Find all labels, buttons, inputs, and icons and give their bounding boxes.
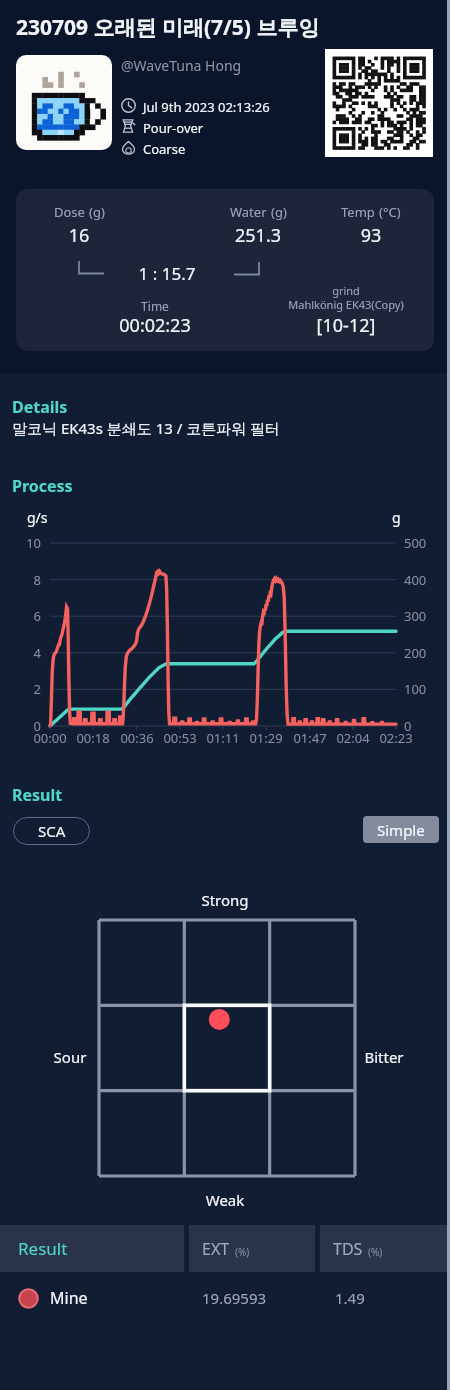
staticText: grind — [236, 283, 450, 298]
staticText: 02:04 — [329, 729, 377, 747]
staticText: (%) — [368, 1245, 383, 1259]
staticText: Details — [12, 396, 68, 418]
staticText: 0 — [404, 717, 412, 735]
staticText: [10-12] — [236, 313, 450, 338]
staticText: @WaveTuna Hong — [121, 56, 242, 75]
staticText: 말코닉 EK43s 분쇄도 13 / 코튼파워 필터 — [12, 418, 281, 438]
button[interactable]: SCA — [13, 817, 90, 845]
staticText: 4 — [14, 644, 41, 662]
button[interactable]: Result — [0, 1225, 184, 1272]
staticText: Water — [230, 203, 267, 221]
staticText: Dose — [54, 203, 85, 221]
staticText: 01:11 — [199, 729, 247, 747]
staticText: 00:00 — [26, 729, 74, 747]
staticText: 00:36 — [113, 729, 161, 747]
staticText: 16 — [0, 223, 189, 248]
staticText: Result — [18, 1237, 68, 1260]
staticText: Mine — [50, 1287, 88, 1309]
staticText: Bitter — [274, 1047, 450, 1067]
staticText: Sour — [0, 1047, 180, 1067]
staticText: Weak — [115, 1190, 335, 1210]
button[interactable]: TDS — [320, 1225, 450, 1272]
staticText: Temp — [341, 203, 375, 221]
staticText: 00:18 — [69, 729, 117, 747]
staticText: 1 : 15.7 — [57, 262, 277, 285]
staticText: 300 — [404, 607, 427, 625]
staticText: Pour-over — [143, 119, 204, 137]
staticText: 0 — [14, 717, 41, 735]
staticText: 251.3 — [148, 223, 368, 248]
staticText: 500 — [404, 534, 427, 552]
staticText: 01:47 — [286, 729, 334, 747]
button[interactable]: EXT — [189, 1225, 315, 1272]
staticText: 200 — [404, 644, 427, 662]
button[interactable]: Simple — [363, 816, 439, 843]
staticText: 01:29 — [242, 729, 290, 747]
staticText: Process — [12, 475, 73, 497]
staticText: (g) — [271, 203, 287, 221]
staticText: Strong — [115, 890, 335, 910]
staticText: 02:23 — [372, 729, 420, 747]
staticText: 00:53 — [156, 729, 204, 747]
staticText: 2 — [14, 680, 41, 698]
staticText: Mahlkönig EK43(Copy) — [236, 297, 450, 312]
staticText: 8 — [14, 571, 41, 589]
staticText: TDS — [333, 1238, 363, 1260]
staticText: g/s — [27, 508, 48, 527]
staticText: Coarse — [143, 140, 186, 158]
staticText: SCA — [38, 821, 66, 841]
button[interactable]: Mine — [0, 1272, 450, 1324]
staticText: 19.69593 — [202, 1288, 267, 1308]
staticText: 230709 오래된 미래(7/5) 브루잉 — [16, 13, 320, 42]
staticText: 00:02:23 — [45, 313, 265, 338]
staticText: g — [392, 508, 401, 527]
staticText: 1.49 — [335, 1288, 365, 1308]
staticText: EXT — [202, 1238, 230, 1260]
staticText: Result — [12, 784, 63, 806]
staticText: 400 — [404, 571, 427, 589]
staticText: (°C) — [379, 203, 401, 221]
staticText: Jul 9th 2023 02:13:26 — [143, 98, 270, 116]
staticText: (%) — [235, 1245, 250, 1259]
staticText: 93 — [261, 223, 450, 248]
staticText: Time — [45, 298, 265, 314]
staticText: Simple — [377, 820, 425, 840]
staticText: 100 — [404, 680, 427, 698]
staticText: (g) — [89, 203, 105, 221]
staticText: 10 — [14, 534, 41, 552]
staticText: 6 — [14, 607, 41, 625]
